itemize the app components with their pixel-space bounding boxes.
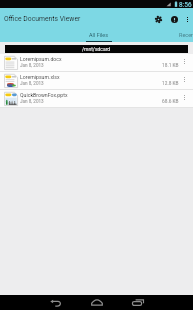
button[interactable]: More options	[182, 8, 193, 30]
button[interactable]: Recents	[126, 295, 149, 310]
button[interactable]: Home	[85, 295, 108, 310]
staticText: 68.6 KB	[162, 99, 179, 105]
staticText: 8:56	[179, 1, 192, 9]
button[interactable]: Loremipsum.xlsx	[0, 72, 193, 90]
staticText: /mnt/sdcard	[82, 46, 111, 52]
button[interactable]: More options	[179, 54, 190, 68]
button[interactable]: QuickBrownFox.pptx	[0, 90, 193, 108]
button[interactable]: Help	[166, 8, 182, 30]
button[interactable]: More options	[179, 72, 190, 86]
button[interactable]: More options	[179, 90, 190, 104]
button[interactable]: All Files	[74, 30, 124, 41]
staticText: Jan 8, 2013	[20, 99, 44, 104]
staticText: QuickBrownFox.pptx	[20, 92, 68, 98]
staticText: Jan 8, 2013	[20, 63, 44, 68]
button[interactable]: Settings	[150, 8, 166, 30]
button[interactable]: Recent	[170, 30, 193, 41]
staticText: Loremipsum.docx	[20, 56, 62, 62]
button[interactable]: /mnt/sdcard	[5, 45, 188, 53]
staticText: Recent	[179, 32, 193, 38]
staticText: 12.8 KB	[162, 81, 179, 87]
staticText: Office Documents Viewer	[4, 15, 81, 23]
staticText: Loremipsum.xlsx	[20, 74, 60, 80]
staticText: Jan 8, 2013	[20, 81, 44, 86]
button[interactable]: Back	[44, 295, 67, 310]
staticText: 18.1 KB	[162, 63, 179, 69]
button[interactable]: Loremipsum.docx	[0, 54, 193, 72]
staticText: All Files	[89, 32, 109, 38]
